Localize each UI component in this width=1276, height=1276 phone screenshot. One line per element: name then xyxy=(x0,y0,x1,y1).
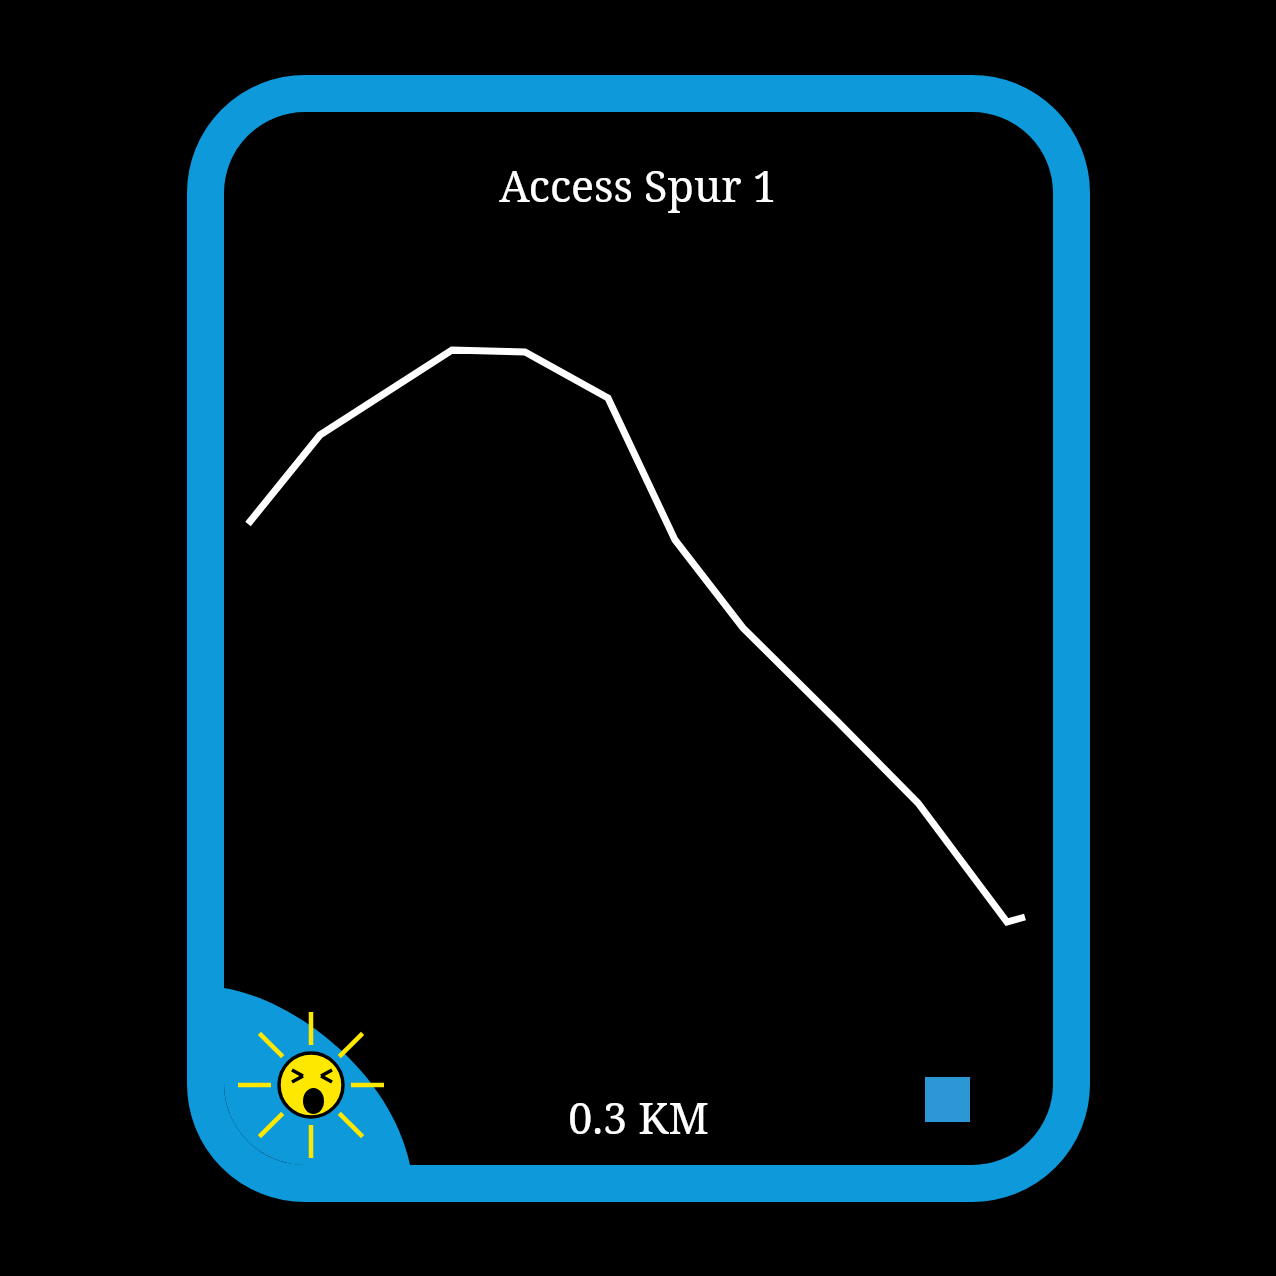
button[interactable]: 0.3 KM xyxy=(568,1088,709,1147)
button[interactable]: Access Spur 1 xyxy=(499,156,777,215)
button[interactable]: Weather xyxy=(238,1012,384,1158)
